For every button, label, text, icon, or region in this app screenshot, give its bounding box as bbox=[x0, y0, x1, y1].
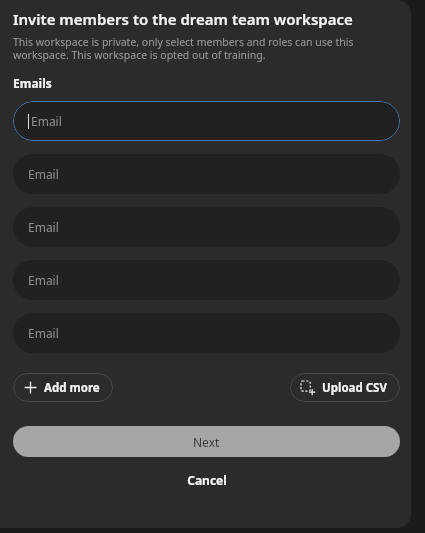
button[interactable]: Cancel bbox=[13, 466, 400, 494]
staticText: Email bbox=[28, 272, 59, 288]
staticText: Email bbox=[31, 113, 62, 129]
other: Add more bbox=[24, 381, 37, 394]
staticText: Email bbox=[28, 166, 59, 182]
button[interactable]: Email bbox=[13, 101, 400, 141]
staticText: Next bbox=[193, 434, 220, 450]
button[interactable]: Email bbox=[13, 154, 400, 194]
other: Upload CSV bbox=[301, 381, 315, 395]
staticText: Cancel bbox=[187, 472, 227, 488]
staticText: Email bbox=[28, 219, 59, 235]
button[interactable]: Email bbox=[13, 313, 400, 353]
staticText: Invite members to the dream team workspa… bbox=[13, 9, 353, 29]
staticText: Add more bbox=[44, 380, 100, 396]
button[interactable]: Email bbox=[13, 207, 400, 247]
staticText: Emails bbox=[13, 75, 52, 91]
staticText: Upload CSV bbox=[322, 380, 387, 396]
button[interactable]: Add more bbox=[13, 373, 113, 402]
button[interactable]: Email bbox=[13, 260, 400, 300]
staticText: Email bbox=[28, 325, 59, 341]
button[interactable]: Next bbox=[13, 426, 400, 457]
staticText: This workspace is private, only select m… bbox=[13, 35, 383, 62]
button[interactable]: Upload CSV bbox=[290, 373, 400, 402]
